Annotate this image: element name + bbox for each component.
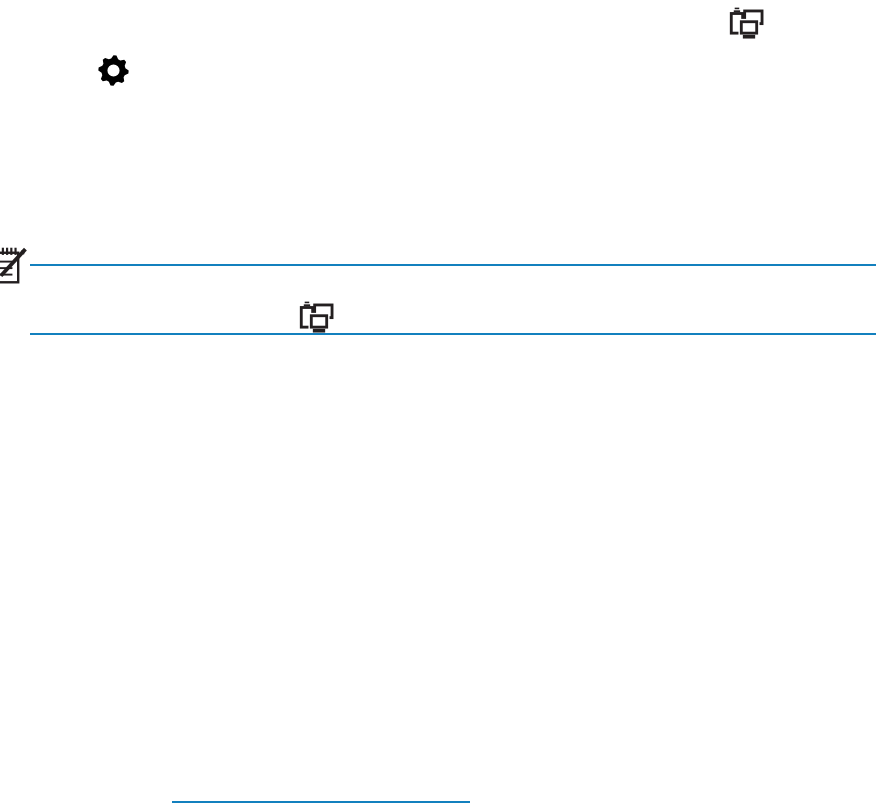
- button[interactable]: Settings: [97, 54, 130, 87]
- button[interactable]: Connected devices: [299, 299, 337, 335]
- button[interactable]: Edit note: [0, 247, 26, 283]
- button[interactable]: Connected devices: [729, 5, 767, 41]
